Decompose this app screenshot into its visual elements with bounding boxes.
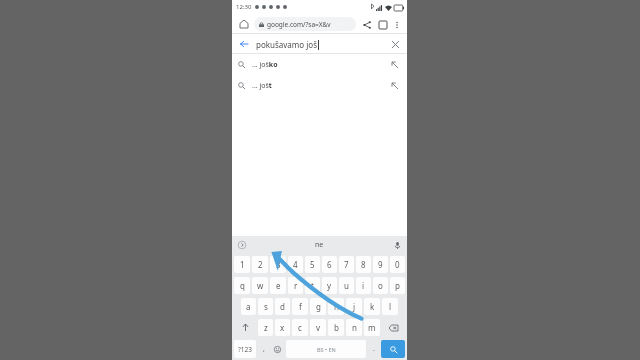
staticText: b: [334, 322, 339, 333]
staticText: .: [373, 344, 375, 354]
button[interactable]: ?123: [234, 340, 256, 358]
button[interactable]: a: [241, 298, 256, 315]
staticText: 8: [361, 259, 366, 270]
staticText: j: [353, 301, 356, 312]
button[interactable]: .: [367, 340, 380, 358]
staticText: f: [299, 301, 302, 312]
staticText: n: [352, 322, 357, 333]
staticText: h: [334, 301, 339, 312]
staticText: 6: [327, 259, 332, 270]
button[interactable]: 7: [339, 256, 354, 273]
staticText: 9: [378, 259, 383, 270]
button[interactable]: 8: [356, 256, 371, 273]
button[interactable]: 2: [252, 256, 268, 273]
button[interactable]: v: [310, 319, 326, 336]
button[interactable]: ... joško: [232, 54, 407, 75]
button[interactable]: 9: [373, 256, 388, 273]
button[interactable]: Insert suggestion: [389, 59, 401, 71]
button[interactable]: Expand suggestions: [236, 239, 248, 251]
button[interactable]: 1: [234, 256, 250, 273]
button[interactable]: u: [339, 277, 354, 294]
staticText: r: [294, 280, 298, 291]
button[interactable]: 3: [270, 256, 286, 273]
staticText: a: [246, 301, 251, 312]
button[interactable]: p: [390, 277, 405, 294]
button[interactable]: t: [305, 277, 320, 294]
staticText: u: [344, 280, 349, 291]
button[interactable]: m: [364, 319, 380, 336]
button[interactable]: y: [322, 277, 337, 294]
staticText: g: [316, 301, 321, 312]
button[interactable]: 0: [390, 256, 405, 273]
staticText: o: [378, 280, 383, 291]
button[interactable]: google.com/?sa=X&v: [254, 17, 356, 31]
button[interactable]: Search: [381, 340, 405, 358]
button[interactable]: 5: [305, 256, 320, 273]
button[interactable]: q: [234, 277, 250, 294]
staticText: v: [316, 322, 321, 333]
button[interactable]: 4: [288, 256, 303, 273]
staticText: s: [264, 301, 268, 312]
button[interactable]: Shift: [234, 319, 256, 336]
button[interactable]: f: [292, 298, 308, 315]
button[interactable]: 6: [322, 256, 337, 273]
staticText: pokušavamo još: [256, 39, 317, 50]
staticText: p: [395, 280, 400, 291]
staticText: i: [362, 280, 365, 291]
button[interactable]: z: [258, 319, 273, 336]
staticText: y: [327, 280, 332, 291]
button[interactable]: Share: [360, 18, 373, 31]
button[interactable]: w: [252, 277, 268, 294]
button[interactable]: Clear: [388, 37, 402, 51]
staticText: d: [280, 301, 285, 312]
button[interactable]: ... jošt: [232, 75, 407, 96]
button[interactable]: g: [310, 298, 326, 315]
button[interactable]: n: [346, 319, 362, 336]
button[interactable]: Tabs: [376, 18, 389, 31]
staticText: ?123: [238, 345, 252, 354]
staticText: q: [240, 280, 245, 291]
button[interactable]: c: [292, 319, 308, 336]
button[interactable]: Insert suggestion: [389, 80, 401, 92]
button[interactable]: Home: [237, 17, 251, 31]
button[interactable]: h: [328, 298, 344, 315]
button[interactable]: x: [275, 319, 290, 336]
staticText: 2: [258, 259, 263, 270]
staticText: k: [370, 301, 375, 312]
button[interactable]: k: [364, 298, 380, 315]
button[interactable]: o: [373, 277, 388, 294]
staticText: l: [389, 301, 392, 312]
staticText: 7: [344, 259, 349, 270]
staticText: ... jošt: [252, 81, 272, 91]
button[interactable]: Back: [237, 37, 251, 51]
staticText: 1: [240, 259, 245, 270]
button[interactable]: r: [288, 277, 303, 294]
staticText: 3: [276, 259, 281, 270]
button[interactable]: b: [328, 319, 344, 336]
staticText: 5: [310, 259, 315, 270]
staticText: z: [264, 322, 268, 333]
staticText: ne: [315, 240, 324, 250]
button[interactable]: d: [275, 298, 290, 315]
button[interactable]: i: [356, 277, 371, 294]
button[interactable]: Voice input: [391, 239, 403, 251]
staticText: BS • EN: [317, 346, 336, 353]
button[interactable]: l: [382, 298, 398, 315]
button[interactable]: Backspace: [382, 319, 405, 336]
staticText: e: [276, 280, 281, 291]
staticText: x: [280, 322, 285, 333]
staticText: 12:30: [236, 3, 252, 11]
button[interactable]: s: [258, 298, 273, 315]
staticText: t: [311, 280, 314, 291]
staticText: 0: [395, 259, 400, 270]
button[interactable]: ,: [257, 340, 270, 358]
button[interactable]: e: [270, 277, 286, 294]
staticText: c: [298, 322, 302, 333]
button[interactable]: j: [346, 298, 362, 315]
staticText: w: [257, 280, 264, 291]
button[interactable]: More options: [391, 19, 402, 30]
button[interactable]: BS • EN: [286, 340, 366, 358]
button[interactable]: Emoji: [270, 340, 285, 358]
button[interactable]: ne: [248, 240, 391, 250]
staticText: ,: [263, 344, 265, 354]
